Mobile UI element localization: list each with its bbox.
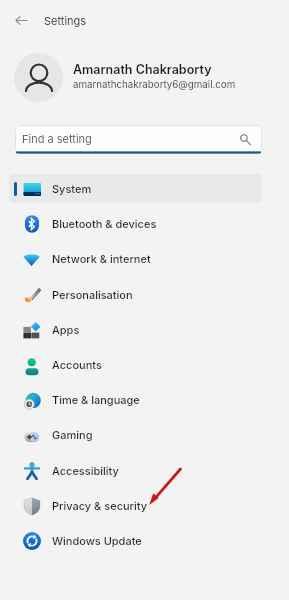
staticText: Privacy & security	[52, 499, 148, 512]
staticText: Accounts	[52, 358, 102, 371]
staticText: Gaming	[52, 428, 93, 441]
button[interactable]: Personalisation	[9, 280, 262, 309]
button[interactable]: Network & internet	[9, 244, 262, 273]
button[interactable]: Bluetooth & devices	[9, 209, 262, 238]
staticText: Time & language	[52, 393, 140, 406]
staticText: Accessibility	[52, 464, 119, 477]
staticText: Personalisation	[52, 288, 133, 301]
staticText: System	[52, 182, 92, 195]
button[interactable]: System	[9, 174, 262, 203]
button[interactable]: Accessibility	[9, 456, 262, 485]
button[interactable]: Amarnath Chakraborty	[0, 48, 289, 106]
staticText: Network & internet	[52, 252, 151, 265]
staticText: Apps	[52, 323, 80, 336]
button[interactable]: Time & language	[9, 385, 262, 414]
staticText: Amarnath Chakraborty	[73, 62, 212, 77]
staticText: Bluetooth & devices	[52, 217, 157, 230]
button[interactable]: Windows Update	[9, 526, 262, 555]
button[interactable]: Accounts	[9, 350, 262, 379]
button[interactable]: Back	[11, 10, 32, 31]
other: Search	[240, 133, 252, 145]
staticText: Find a setting	[22, 132, 92, 145]
button[interactable]: Gaming	[9, 420, 262, 449]
button[interactable]: Privacy & security	[9, 491, 262, 520]
button[interactable]: Apps	[9, 315, 262, 344]
staticText: Windows Update	[52, 534, 142, 547]
staticText: Settings	[44, 14, 87, 27]
staticText: amarnathchakraborty6@gmail.com	[73, 79, 236, 91]
button[interactable]: Find a setting	[15, 125, 262, 154]
